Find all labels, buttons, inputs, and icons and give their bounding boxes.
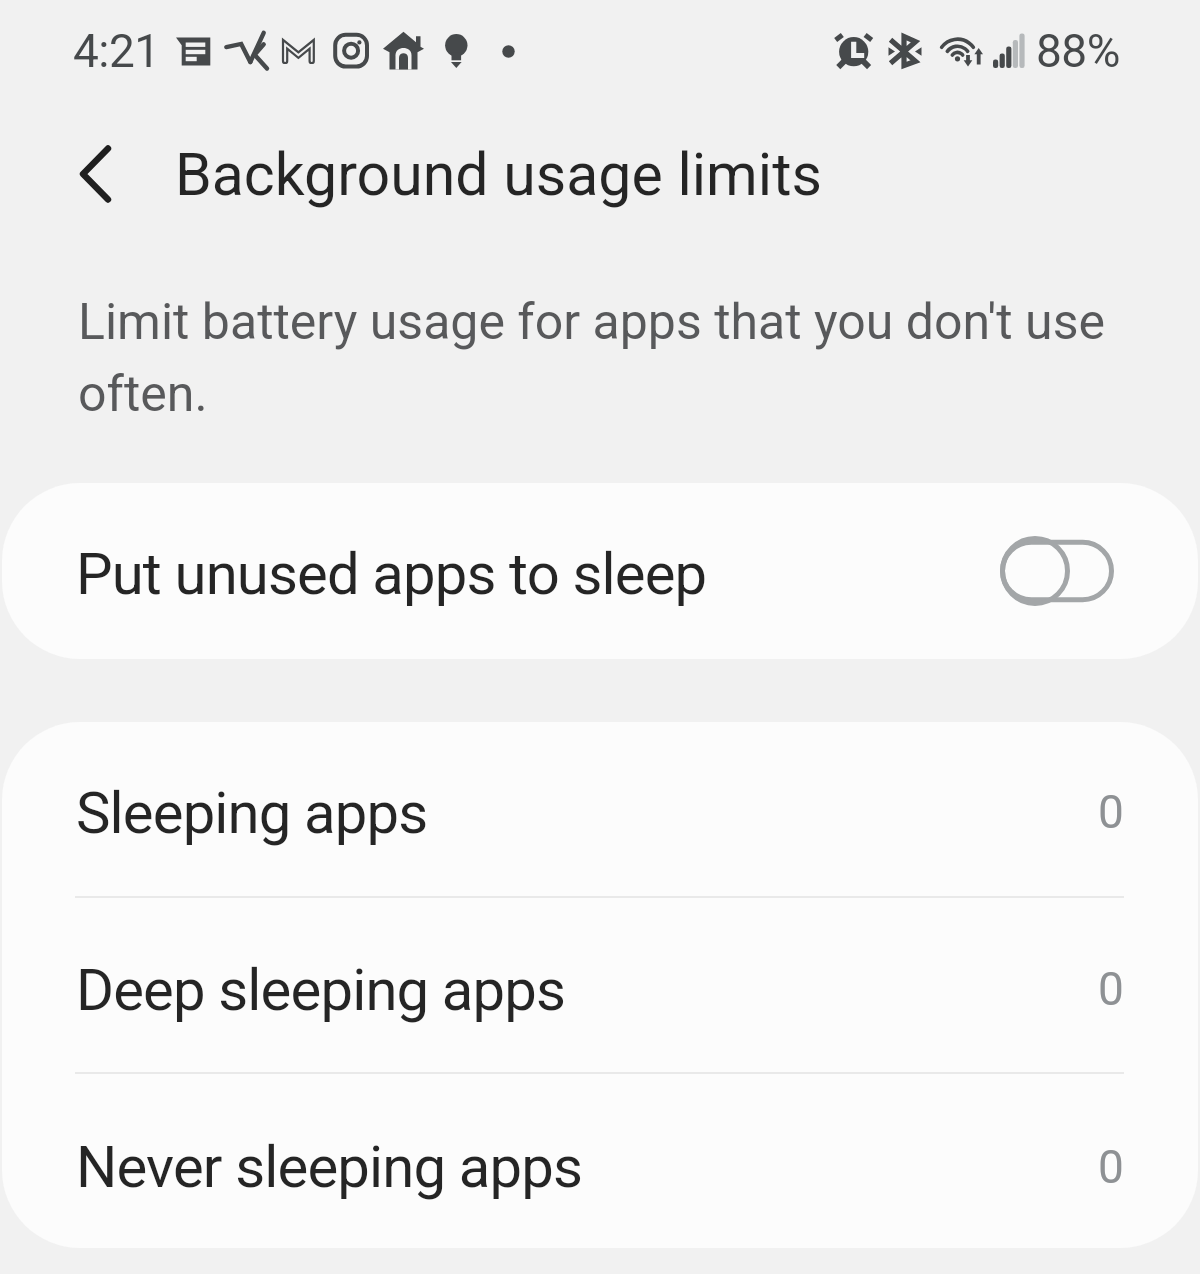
button[interactable]: Sleeping apps <box>2 722 1198 896</box>
staticText: 4:21 <box>73 24 160 78</box>
staticText: 0 <box>1098 785 1124 839</box>
button[interactable]: Deep sleeping apps <box>2 898 1198 1072</box>
staticText: Sleeping apps <box>76 779 428 847</box>
staticText: Never sleeping apps <box>76 1133 582 1201</box>
staticText: Limit battery usage for apps that you do… <box>78 293 1138 423</box>
button[interactable]: Navigate up <box>53 134 143 224</box>
staticText: 0 <box>1098 1140 1124 1194</box>
staticText: Put unused apps to sleep <box>76 540 707 608</box>
button[interactable]: Never sleeping apps <box>2 1074 1198 1248</box>
button[interactable]: Put unused apps to sleep <box>2 483 1198 659</box>
staticText: 88% <box>1036 24 1120 78</box>
staticText: Background usage limits <box>175 140 822 209</box>
staticText: 0 <box>1098 962 1124 1016</box>
staticText: Deep sleeping apps <box>76 956 566 1024</box>
button[interactable]: Put unused apps to sleep, off <box>1000 536 1114 606</box>
